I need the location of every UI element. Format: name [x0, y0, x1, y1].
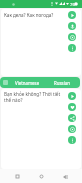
button[interactable]: Copy	[68, 33, 76, 41]
button[interactable]: Menu	[3, 80, 8, 85]
button[interactable]: Play	[68, 11, 76, 19]
staticText: Bạn khỏe không? Thời tiết thế nào?	[4, 91, 61, 103]
staticText: Russian	[54, 80, 70, 86]
button[interactable]: Recent apps	[11, 170, 24, 183]
staticText: Как дела? Как погода?	[4, 12, 68, 18]
button[interactable]: Microphone	[68, 22, 76, 30]
staticText: Vietnamese	[15, 80, 40, 86]
button[interactable]: Favorite	[68, 103, 76, 111]
button[interactable]: Copy	[68, 125, 76, 133]
staticText: 76	[70, 2, 75, 8]
button[interactable]: Vietnamese	[10, 77, 44, 88]
button[interactable]: More options	[68, 44, 76, 52]
button[interactable]: Home	[35, 170, 48, 183]
button[interactable]: Share	[68, 114, 76, 122]
button[interactable]: More options	[68, 136, 76, 144]
button[interactable]: Russian	[45, 77, 79, 88]
button[interactable]: Play	[68, 92, 76, 100]
button[interactable]: Back	[58, 170, 71, 183]
